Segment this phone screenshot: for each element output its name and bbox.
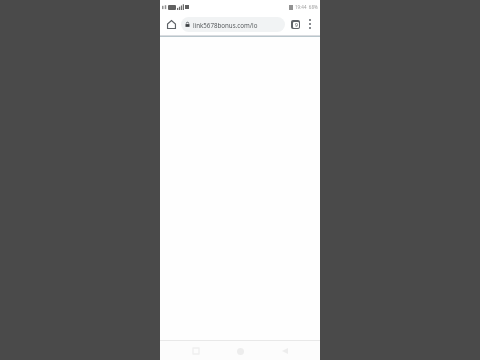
button[interactable]: link5678bonus.com/lo [181, 17, 285, 32]
button[interactable]: Home [231, 342, 249, 360]
button[interactable]: Tabs [287, 16, 303, 32]
staticText: 19:44 68% [295, 4, 318, 10]
staticText: link5678bonus.com/lo [193, 21, 258, 29]
staticText: 9 [295, 22, 298, 28]
button[interactable]: Back [276, 342, 294, 360]
button[interactable]: Recent apps [187, 342, 205, 360]
button[interactable]: More options [303, 17, 317, 31]
button[interactable]: Home [163, 16, 179, 32]
